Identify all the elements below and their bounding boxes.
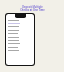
staticText: Checks at One Time bbox=[20, 8, 45, 11]
staticText: Deposit Multiple bbox=[22, 5, 43, 8]
